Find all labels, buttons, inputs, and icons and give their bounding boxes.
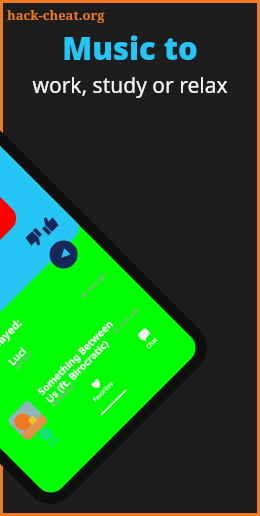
- button[interactable]: Play: [44, 235, 83, 274]
- staticText: Luci: [5, 344, 30, 368]
- staticText: work, study or relax: [32, 71, 228, 100]
- button[interactable]: Live: [27, 416, 73, 462]
- staticText: Recently played:: [0, 315, 25, 390]
- staticText: Favorites: [91, 380, 115, 404]
- staticText: HM Surf: [13, 350, 35, 372]
- button[interactable]: Chat: [126, 317, 172, 363]
- staticText: Live: [46, 435, 60, 449]
- staticText: hack-cheat.org: [7, 6, 105, 24]
- staticText: 50 mins ago: [111, 305, 141, 336]
- staticText: Something Between Us (ft. Birocratic): [35, 317, 124, 406]
- staticText: 49 mins ago: [78, 270, 109, 300]
- button[interactable]: Favorites: [78, 366, 123, 411]
- staticText: Music to: [62, 27, 198, 69]
- staticText: Chat: [144, 335, 160, 351]
- staticText: khudosoul: [49, 382, 76, 409]
